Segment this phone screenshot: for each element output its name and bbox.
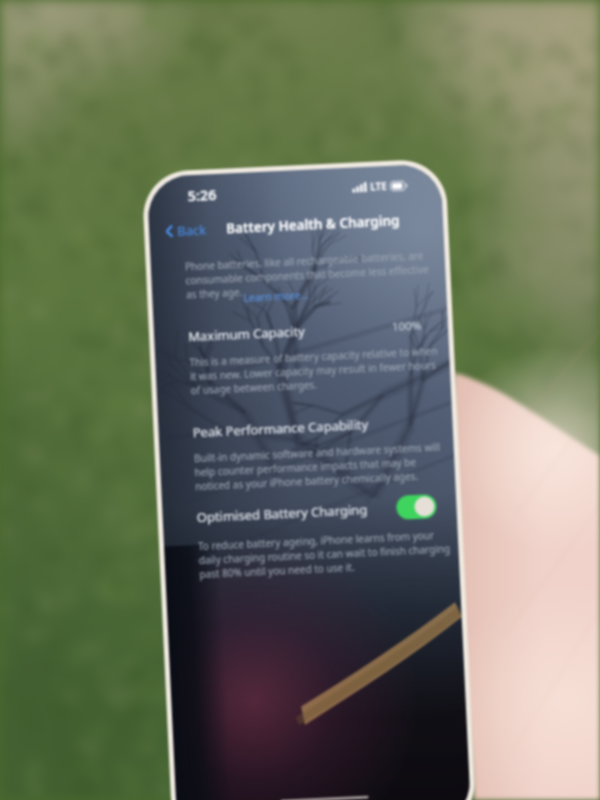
staticText: Maximum Capacity bbox=[188, 322, 305, 345]
staticText: This is a measure of battery capacity re… bbox=[189, 344, 440, 397]
button[interactable]: Maximum Capacity bbox=[154, 315, 448, 347]
staticText: Phone batteries, like all rechargeable b… bbox=[184, 248, 430, 301]
staticText: 5:26 bbox=[187, 184, 217, 205]
staticText: Optimised Battery Charging bbox=[196, 500, 368, 526]
staticText: Built-in dynamic software and hardware s… bbox=[194, 440, 442, 493]
button[interactable]: Back bbox=[161, 216, 211, 245]
button[interactable]: Optimised Battery Charging toggle bbox=[396, 494, 437, 520]
staticText: 100% bbox=[392, 317, 422, 335]
button[interactable]: Learn more... bbox=[242, 286, 311, 307]
staticText: To reduce battery ageing, iPhone learns … bbox=[198, 527, 451, 581]
button[interactable]: Peak Performance Capability bbox=[158, 411, 453, 443]
staticText: Peak Performance Capability bbox=[192, 415, 369, 441]
staticText: Back bbox=[177, 221, 207, 240]
staticText: Battery Health & Charging bbox=[226, 211, 400, 238]
staticText: Learn more... bbox=[243, 288, 310, 305]
staticText: LTE bbox=[370, 179, 388, 194]
